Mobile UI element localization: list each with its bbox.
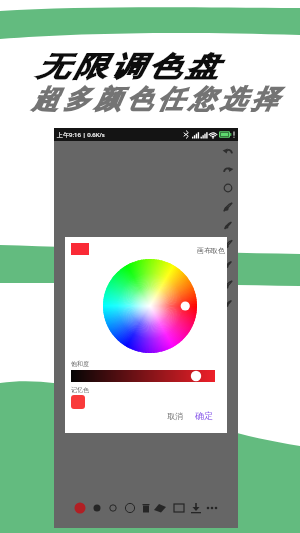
button[interactable]: 确定 [193, 407, 215, 424]
staticText: 取消 [167, 411, 183, 421]
button[interactable]: 画布取色 [197, 246, 225, 255]
button[interactable] [71, 395, 85, 409]
staticText: 画布取色 [197, 246, 225, 255]
staticText: 记忆色 [71, 386, 89, 394]
staticText: 上午9:16 | 0.6K/s [57, 131, 105, 139]
button[interactable]: 取消 [165, 408, 185, 424]
staticText: 无限调色盘 [34, 49, 220, 84]
staticText: 确定 [195, 410, 213, 421]
staticText: 饱和度 [71, 360, 89, 368]
staticText: 超多颜色任您选择 [32, 83, 283, 116]
